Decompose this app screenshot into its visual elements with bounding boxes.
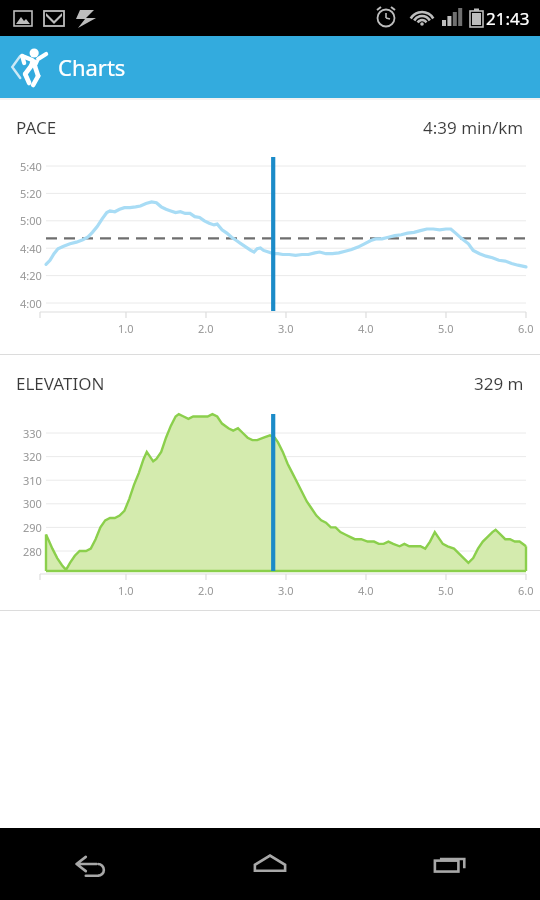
staticText: Charts: [58, 52, 126, 82]
staticText: PACE: [16, 116, 57, 139]
button[interactable]: Recent apps: [360, 828, 540, 900]
staticText: 21:43: [486, 7, 530, 30]
button[interactable]: Back: [0, 828, 180, 900]
button[interactable]: Back: [0, 36, 58, 98]
staticText: 4:39 min/km: [423, 116, 524, 139]
staticText: 329 m: [474, 372, 524, 395]
staticText: ELEVATION: [16, 372, 105, 395]
button[interactable]: Home: [180, 828, 360, 900]
